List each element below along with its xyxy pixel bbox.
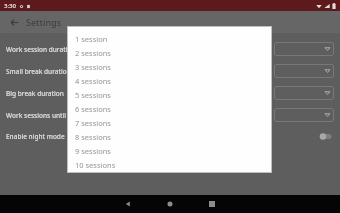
button[interactable]: 1 session [75, 32, 272, 46]
button[interactable]: Back [117, 195, 139, 213]
button[interactable]: 8 sessions [75, 130, 272, 144]
staticText: 10 sessions [75, 160, 116, 170]
staticText: 3 sessions [75, 62, 111, 72]
button[interactable]: Work sessions until big break [0, 104, 340, 126]
button[interactable]: Navigate up [6, 14, 22, 30]
staticText: 4 sessions [75, 76, 111, 86]
staticText: 7 sessions [75, 118, 111, 128]
staticText: 2 sessions [75, 48, 111, 58]
button[interactable]: 2 sessions [75, 46, 272, 60]
staticText: 3:30 [4, 2, 16, 10]
button[interactable]: Work session duration [0, 38, 340, 60]
staticText: 6 sessions [75, 104, 111, 114]
button[interactable]: 9 sessions [75, 144, 272, 158]
button[interactable]: Home [159, 195, 181, 213]
staticText: 5 sessions [75, 90, 111, 100]
staticText: 9 sessions [75, 146, 111, 156]
staticText: Small break duration [6, 67, 274, 76]
staticText: Work sessions until big break [6, 111, 274, 120]
button[interactable]: 3 sessions [75, 60, 272, 74]
button[interactable]: 4 sessions [75, 74, 272, 88]
button[interactable]: 7 sessions [75, 116, 272, 130]
button[interactable]: Small break duration [0, 60, 340, 82]
button[interactable]: Recent apps [201, 195, 223, 213]
button[interactable]: Enable night mode [0, 126, 340, 146]
staticText: 1 session [75, 34, 108, 44]
staticText: Enable night mode [6, 132, 318, 141]
staticText: Settings [26, 16, 62, 28]
staticText: Work session duration [6, 45, 274, 54]
staticText: 8 sessions [75, 132, 111, 142]
staticText: Big break duration [6, 89, 274, 98]
button[interactable]: 5 sessions [75, 88, 272, 102]
button[interactable]: Big break duration [0, 82, 340, 104]
button[interactable]: 6 sessions [75, 102, 272, 116]
button[interactable]: 10 sessions [75, 158, 272, 172]
